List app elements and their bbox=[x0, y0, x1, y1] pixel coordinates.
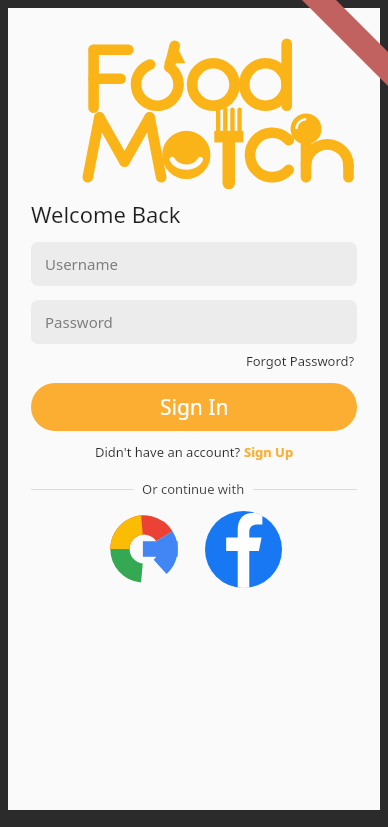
button[interactable]: Sign in with Facebook bbox=[204, 510, 282, 588]
staticText: Sign In bbox=[160, 393, 229, 422]
staticText: Username bbox=[45, 254, 118, 274]
button[interactable]: Sign Up bbox=[244, 443, 294, 461]
button[interactable]: Forgot Password? bbox=[244, 350, 357, 372]
staticText: Welcome Back bbox=[31, 199, 181, 229]
staticText: Didn't have an account? bbox=[95, 443, 244, 461]
button[interactable]: Password bbox=[31, 300, 357, 344]
staticText: Password bbox=[45, 312, 113, 332]
staticText: Or continue with bbox=[142, 480, 245, 498]
button[interactable]: Sign In bbox=[31, 383, 357, 431]
button[interactable]: Username bbox=[31, 242, 357, 286]
staticText: Forgot Password? bbox=[246, 352, 355, 370]
staticText: Sign Up bbox=[244, 443, 294, 461]
button[interactable]: Sign in with Google bbox=[106, 511, 182, 587]
